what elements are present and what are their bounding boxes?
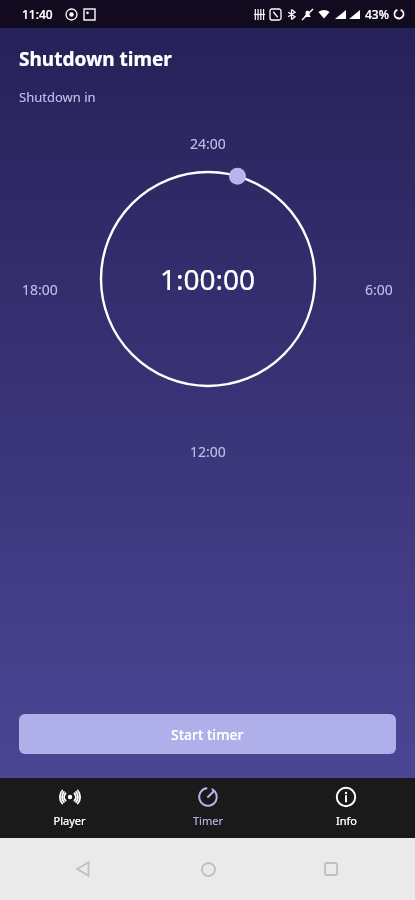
button[interactable]: Timer duration dial — [93, 164, 323, 394]
staticText: Shutdown timer — [19, 46, 172, 72]
staticText: Shutdown in — [19, 88, 96, 106]
staticText: Info — [336, 813, 357, 828]
button[interactable]: Info — [277, 778, 415, 838]
button[interactable]: Timer — [139, 778, 277, 838]
button[interactable]: Player — [0, 778, 139, 838]
staticText: 18:00 — [22, 280, 58, 299]
button[interactable]: Back — [64, 849, 104, 889]
staticText: 24:00 — [190, 134, 226, 153]
staticText: Start timer — [171, 725, 244, 744]
button[interactable]: Home — [188, 849, 228, 889]
staticText: 12:00 — [190, 442, 226, 461]
staticText: 11:40 — [22, 6, 53, 22]
staticText: 43% — [365, 6, 389, 22]
staticText: Player — [53, 813, 86, 828]
button[interactable]: Recent apps — [311, 849, 351, 889]
staticText: 1:00:00 — [160, 260, 256, 298]
staticText: Timer — [193, 813, 223, 828]
staticText: 6:00 — [365, 280, 393, 299]
button[interactable]: Start timer — [19, 714, 396, 754]
